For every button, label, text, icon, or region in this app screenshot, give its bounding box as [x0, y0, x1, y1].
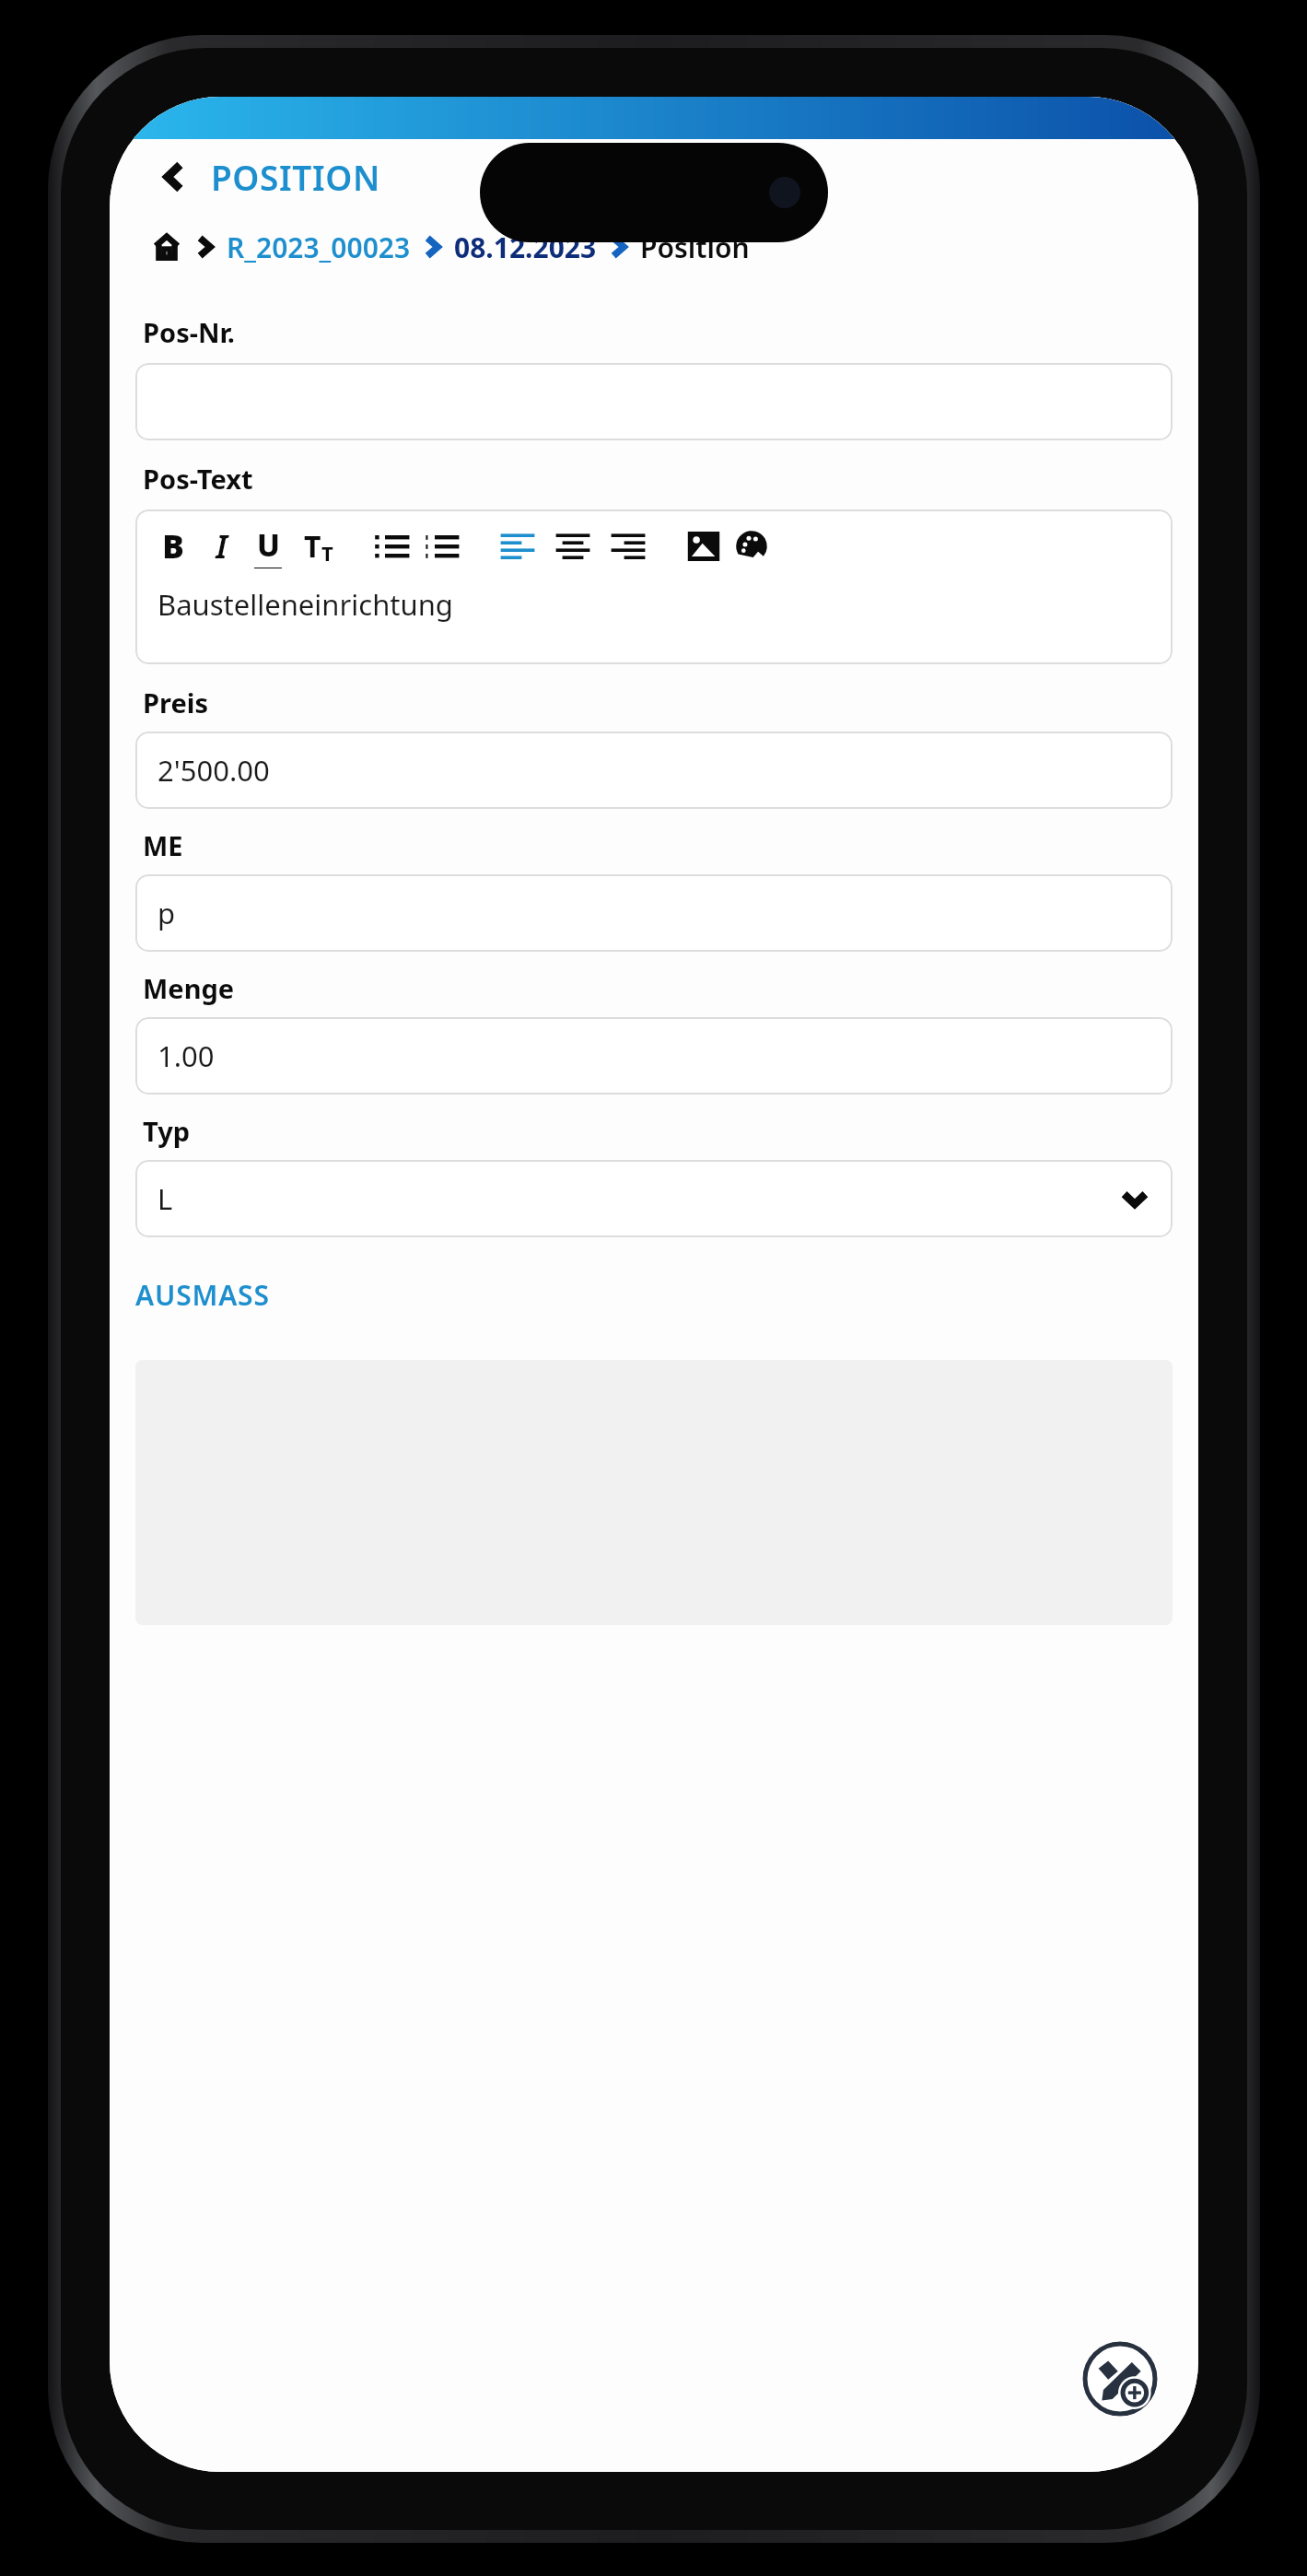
staticText: p	[158, 894, 176, 932]
staticText: AUSMASS	[135, 1276, 270, 1314]
button[interactable]: Numbered list	[421, 525, 463, 568]
staticText: POSITION	[211, 154, 380, 200]
staticText: Menge	[143, 970, 235, 1006]
button[interactable]: B	[135, 509, 1173, 664]
staticText: Baustelleneinrichtung	[158, 585, 453, 624]
staticText: Pos-Nr.	[143, 314, 236, 350]
staticText: B	[162, 524, 184, 568]
staticText: Preis	[143, 685, 208, 720]
button[interactable]: L	[135, 1160, 1173, 1237]
button[interactable]: 08.12.2023	[454, 228, 597, 266]
button[interactable]: 2'500.00	[135, 732, 1173, 809]
staticText: L	[158, 1179, 173, 1218]
staticText: ME	[143, 827, 183, 863]
button[interactable]: 1.00	[135, 1017, 1173, 1095]
button[interactable]: B	[156, 524, 191, 568]
button[interactable]	[135, 363, 1173, 440]
staticText: R_2023_00023	[227, 228, 411, 266]
button[interactable]: Add position	[1082, 2341, 1158, 2417]
staticText: 2'500.00	[158, 751, 270, 790]
button[interactable]: I	[204, 524, 239, 568]
staticText: Position	[640, 228, 750, 266]
button[interactable]: Bullet list	[371, 525, 414, 568]
button[interactable]: Align right	[607, 525, 649, 568]
button[interactable]: p	[135, 874, 1173, 952]
staticText: T	[321, 539, 333, 567]
button[interactable]: Font size	[298, 524, 340, 568]
staticText: 1.00	[158, 1036, 215, 1075]
button[interactable]: Align left	[496, 525, 539, 568]
button[interactable]: Home	[146, 227, 187, 267]
staticText: T	[304, 526, 321, 567]
staticText: U	[257, 524, 280, 566]
button[interactable]: AUSMASS	[135, 1276, 270, 1314]
button[interactable]: Insert image	[683, 525, 725, 568]
button[interactable]: Underline	[250, 524, 286, 568]
button[interactable]: Back	[146, 148, 204, 205]
staticText: 08.12.2023	[454, 228, 597, 266]
staticText: Typ	[143, 1113, 191, 1149]
button[interactable]: Align center	[552, 525, 594, 568]
button[interactable]: Text colour	[730, 525, 773, 568]
button[interactable]: R_2023_00023	[227, 228, 411, 266]
staticText: Pos-Text	[143, 461, 253, 497]
staticText: I	[216, 524, 228, 568]
